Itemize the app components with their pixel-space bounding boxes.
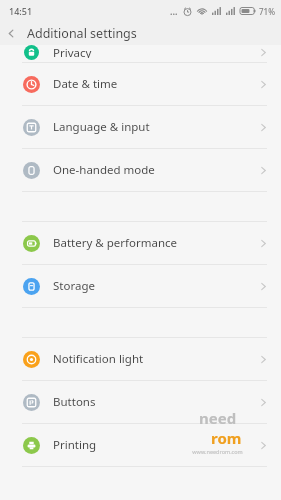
button[interactable]: Date & time bbox=[0, 63, 281, 105]
button[interactable]: Notification light bbox=[0, 338, 281, 380]
staticText: 71% bbox=[259, 6, 275, 17]
staticText: need bbox=[199, 408, 237, 428]
button[interactable]: Buttons bbox=[0, 381, 281, 423]
staticText: Printing bbox=[53, 437, 260, 453]
button[interactable]: Printing bbox=[0, 424, 281, 466]
button[interactable]: Language & input bbox=[0, 106, 281, 148]
button[interactable]: Storage bbox=[0, 265, 281, 307]
button[interactable]: Battery & performance bbox=[0, 222, 281, 264]
staticText: Additional settings bbox=[27, 25, 137, 42]
staticText: Privacy bbox=[53, 45, 260, 58]
staticText: www.needrom.com bbox=[175, 448, 260, 455]
button[interactable]: One-handed mode bbox=[0, 149, 281, 191]
button[interactable]: Back bbox=[0, 22, 22, 44]
staticText: rom bbox=[211, 428, 242, 448]
staticText: 14:51 bbox=[9, 5, 33, 17]
staticText: Date & time bbox=[53, 76, 260, 92]
staticText: Battery & performance bbox=[53, 235, 260, 251]
staticText: Storage bbox=[53, 278, 260, 294]
staticText: One-handed mode bbox=[53, 162, 260, 178]
staticText: Notification light bbox=[53, 351, 260, 367]
button[interactable]: Privacy bbox=[0, 45, 281, 62]
staticText: Buttons bbox=[53, 394, 260, 410]
staticText: Language & input bbox=[53, 119, 260, 135]
staticText: ... bbox=[170, 5, 178, 17]
